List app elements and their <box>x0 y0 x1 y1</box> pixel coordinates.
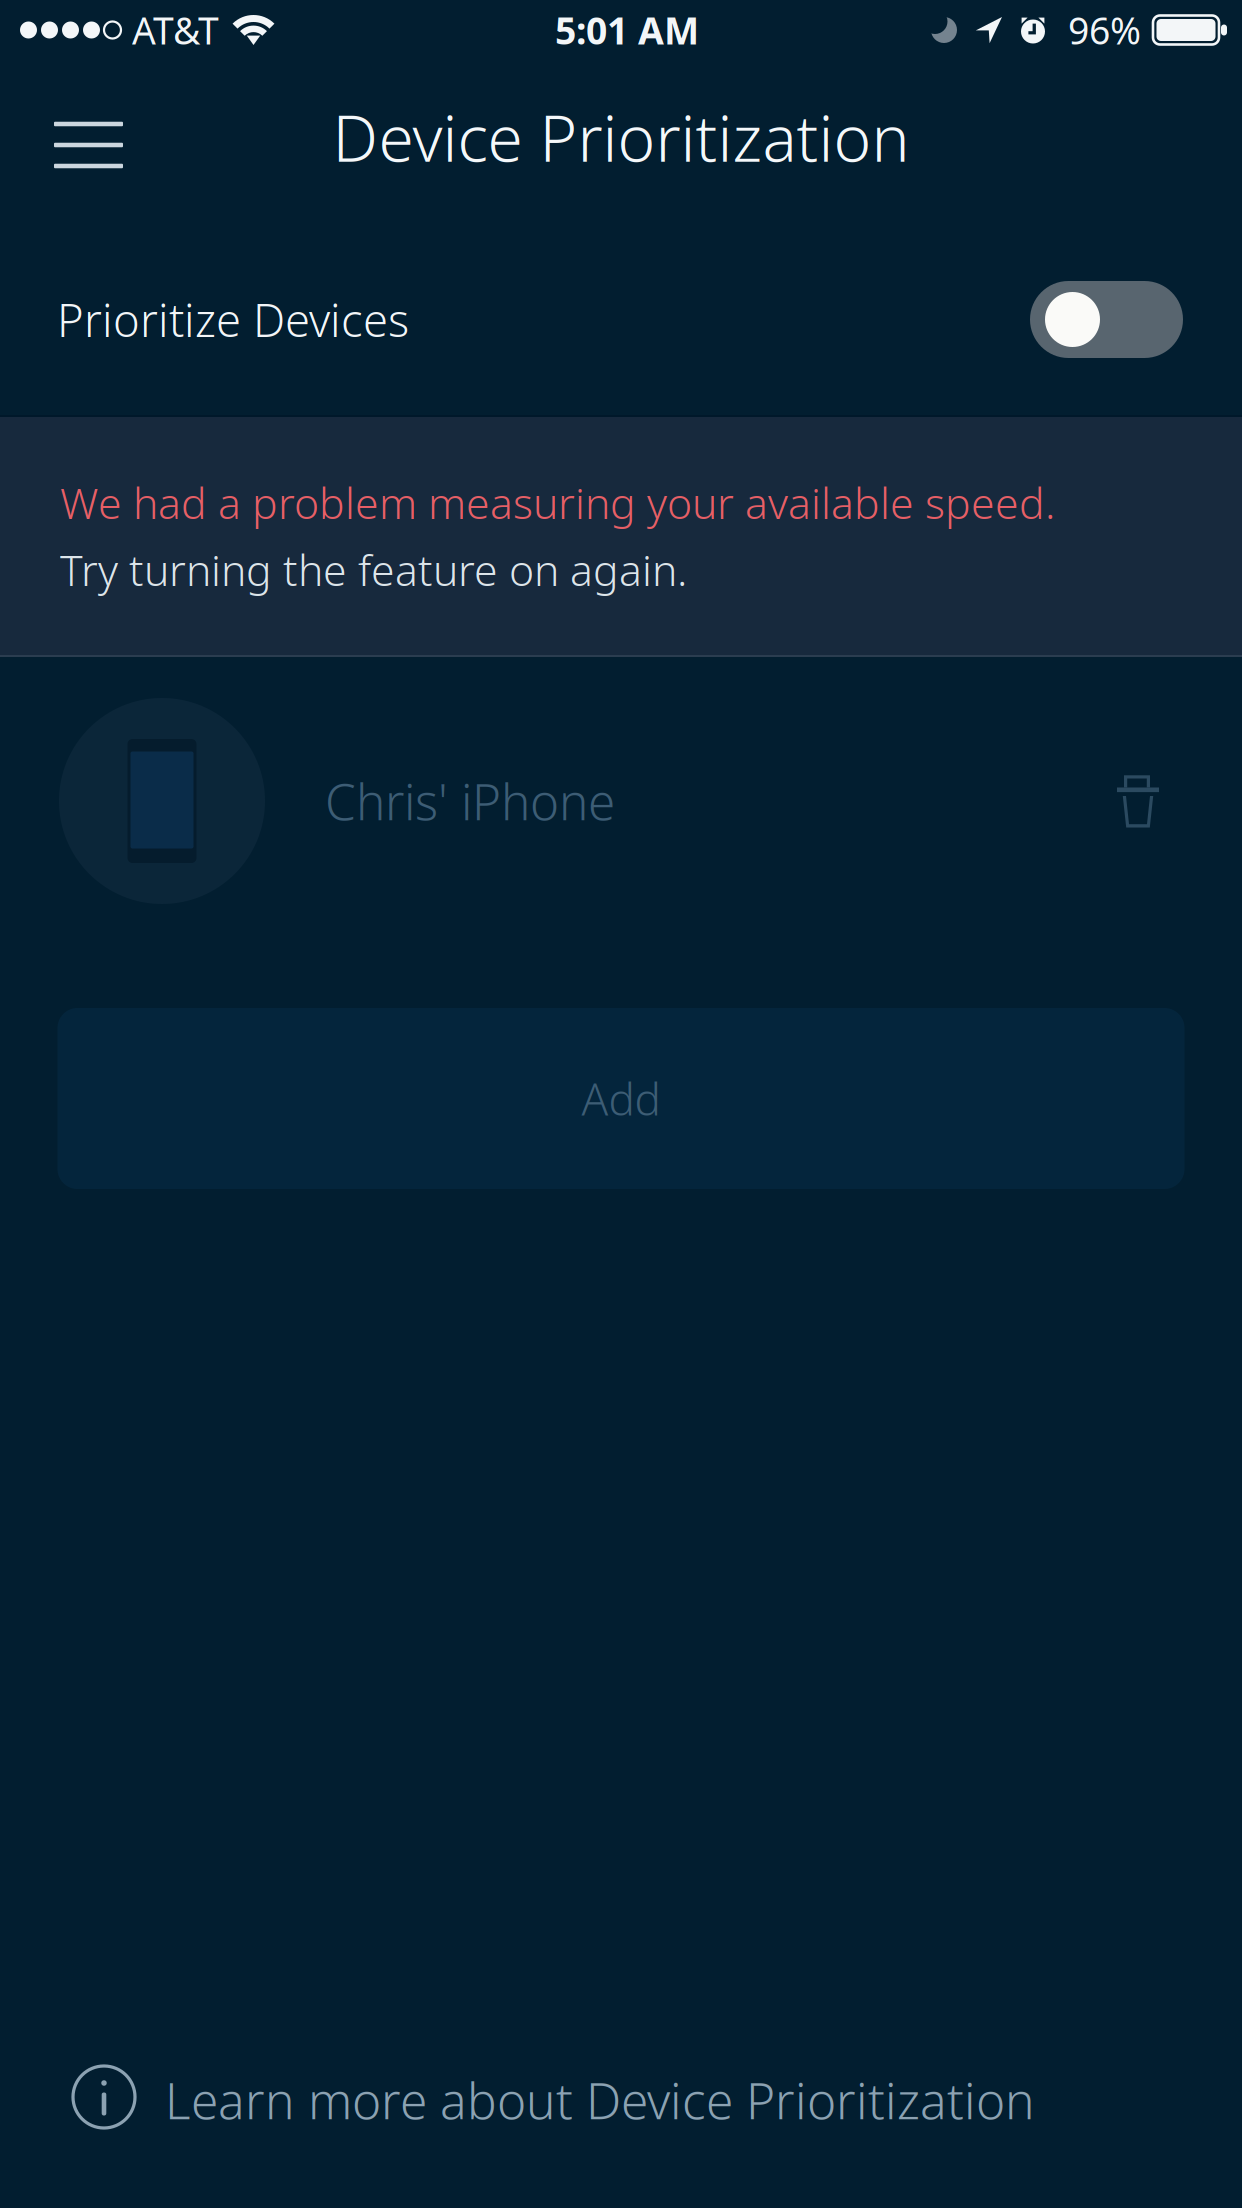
staticText: AT&T <box>132 5 219 55</box>
staticText: Learn more about Device Prioritization <box>165 2066 1035 2134</box>
staticText: Chris' iPhone <box>325 767 615 835</box>
staticText: Add <box>581 1068 660 1128</box>
staticText: We had a problem measuring your availabl… <box>60 473 1055 531</box>
staticText: Try turning the feature on again. <box>60 540 687 599</box>
button[interactable]: Delete Chris' iPhone <box>1088 746 1188 856</box>
staticText: 5:01 AM <box>555 5 699 55</box>
staticText: Prioritize Devices <box>57 289 409 350</box>
staticText: Device Prioritization <box>332 93 909 181</box>
button[interactable]: Prioritize Devices <box>0 230 1242 415</box>
staticText: 96% <box>1068 5 1141 55</box>
button[interactable]: Menu <box>15 90 123 200</box>
button[interactable]: Learn more about Device Prioritization <box>0 2020 1242 2174</box>
